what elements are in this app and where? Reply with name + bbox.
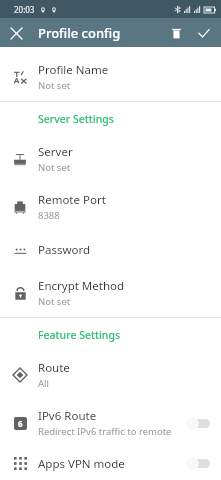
button[interactable]: Remote Port [0, 183, 221, 231]
staticText: Not set [38, 79, 71, 92]
staticText: Password [38, 242, 91, 258]
button[interactable]: Password [0, 231, 221, 269]
staticText: Not set [38, 295, 71, 308]
button[interactable]: Route [0, 351, 221, 399]
staticText: Remote Port [38, 192, 106, 208]
button[interactable]: Save [193, 22, 215, 44]
button[interactable]: Toggle [186, 415, 213, 431]
staticText: Feature Settings [38, 328, 121, 342]
button[interactable]: 6 [0, 399, 221, 447]
staticText: Server Settings [38, 112, 114, 126]
staticText: Profile Name [38, 62, 109, 78]
button[interactable]: Server [0, 135, 221, 183]
button[interactable]: Encrypt Method [0, 269, 221, 317]
staticText: Route [38, 360, 70, 376]
staticText: 6 [18, 418, 23, 429]
button[interactable]: Apps VPN mode [0, 447, 221, 480]
button[interactable]: Profile Name [0, 53, 221, 101]
staticText: 8388 [38, 209, 60, 222]
staticText: Encrypt Method [38, 278, 125, 294]
staticText: IPv6 Route [38, 408, 97, 424]
staticText: Server [38, 144, 73, 160]
staticText: Apps VPN mode [38, 456, 125, 471]
button[interactable]: Toggle [186, 456, 213, 471]
button[interactable]: Close [5, 22, 27, 44]
staticText: Profile config [38, 24, 121, 42]
staticText: 20:03 [14, 4, 35, 15]
staticText: Redirect IPv6 traffic to remote [38, 425, 172, 438]
staticText: All [38, 377, 49, 390]
button[interactable]: Delete [165, 22, 187, 44]
staticText: Not set [38, 161, 71, 174]
